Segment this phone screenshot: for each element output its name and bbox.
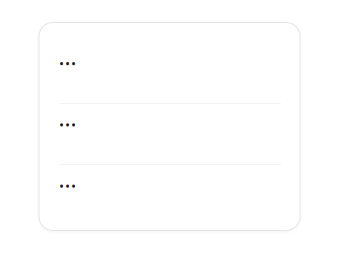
button[interactable]: ... [39, 41, 300, 103]
staticText: ... [59, 103, 77, 133]
staticText: ... [59, 164, 77, 194]
button[interactable]: ... [39, 164, 300, 225]
button[interactable]: ... [39, 103, 300, 164]
staticText: ... [59, 41, 77, 71]
